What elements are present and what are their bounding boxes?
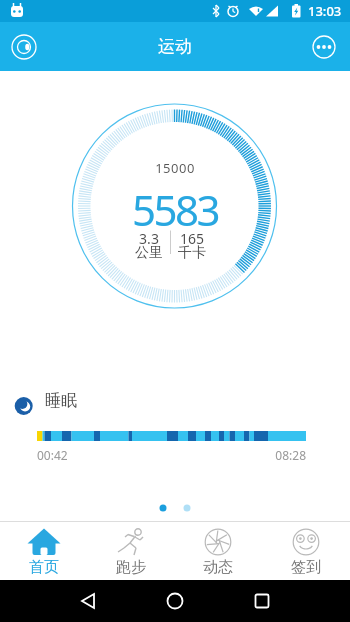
button[interactable]: 动态 <box>174 522 262 580</box>
button[interactable]: 睡眠 <box>45 391 77 411</box>
button[interactable] <box>233 580 350 622</box>
button[interactable]: 首页 <box>0 522 87 580</box>
button[interactable] <box>8 31 40 63</box>
staticText: 08:28 <box>256 447 306 463</box>
staticText: 动态 <box>203 558 233 577</box>
staticText: 5583 <box>0 181 350 238</box>
staticText: 运动 <box>158 36 192 57</box>
staticText: 13:03 <box>308 2 342 20</box>
button[interactable] <box>311 34 337 60</box>
staticText: 首页 <box>29 558 59 577</box>
button[interactable] <box>0 580 116 622</box>
staticText: 签到 <box>291 558 321 577</box>
staticText: 3.3 <box>119 229 179 248</box>
staticText: 165 <box>162 229 222 248</box>
staticText: 15000 <box>0 159 350 177</box>
button[interactable]: 签到 <box>262 522 350 580</box>
staticText: 跑步 <box>116 558 146 577</box>
button[interactable]: 跑步 <box>87 522 174 580</box>
staticText: 千卡 <box>162 244 222 262</box>
button[interactable] <box>116 580 233 622</box>
staticText: 00:42 <box>37 447 68 463</box>
staticText: 公里 <box>119 244 179 262</box>
